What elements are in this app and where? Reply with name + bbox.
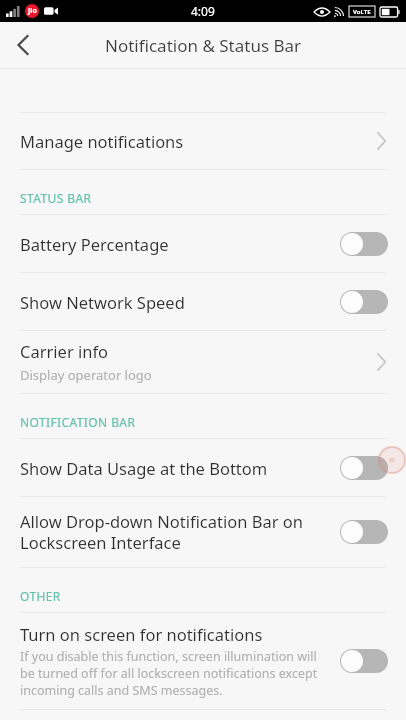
- staticText: VoLTE: [353, 8, 371, 16]
- button[interactable]: Toggle off: [340, 232, 388, 256]
- staticText: Battery Percentage: [20, 233, 169, 255]
- staticText: Carrier info: [20, 340, 109, 362]
- staticText: If you disable this function, screen ill…: [20, 648, 328, 699]
- button[interactable]: Battery Percentage: [0, 215, 406, 272]
- button[interactable]: Toggle off: [340, 290, 388, 314]
- staticText: Jio: [28, 6, 37, 16]
- button[interactable]: Show Data Usage at the Bottom: [0, 439, 406, 496]
- button[interactable]: Carrier info: [0, 331, 406, 393]
- button[interactable]: Back: [0, 22, 46, 68]
- staticText: Turn on screen for notifications: [20, 623, 263, 645]
- button[interactable]: Toggle off: [340, 520, 388, 544]
- staticText: Show Data Usage at the Bottom: [20, 457, 268, 479]
- staticText: Show Network Speed: [20, 291, 185, 313]
- staticText: Display operator logo: [20, 366, 152, 384]
- staticText: STATUS BAR: [20, 190, 406, 206]
- staticText: NOTIFICATION BAR: [20, 414, 406, 430]
- staticText: 4:09: [191, 3, 215, 19]
- button[interactable]: Toggle off: [340, 456, 388, 480]
- staticText: Notification & Status Bar: [105, 34, 302, 57]
- button[interactable]: Show Network Speed: [0, 273, 406, 330]
- staticText: Manage notifications: [20, 130, 184, 152]
- button[interactable]: Manage notifications: [0, 113, 406, 169]
- staticText: Allow Drop-down Notification Bar on Lock…: [20, 510, 328, 554]
- button[interactable]: Toggle off: [340, 649, 388, 673]
- staticText: OTHER: [20, 588, 406, 604]
- other: Assistive touch: [378, 437, 406, 483]
- button[interactable]: Turn on screen for notifications: [0, 613, 406, 709]
- button[interactable]: Allow Drop-down Notification Bar on Lock…: [0, 497, 406, 567]
